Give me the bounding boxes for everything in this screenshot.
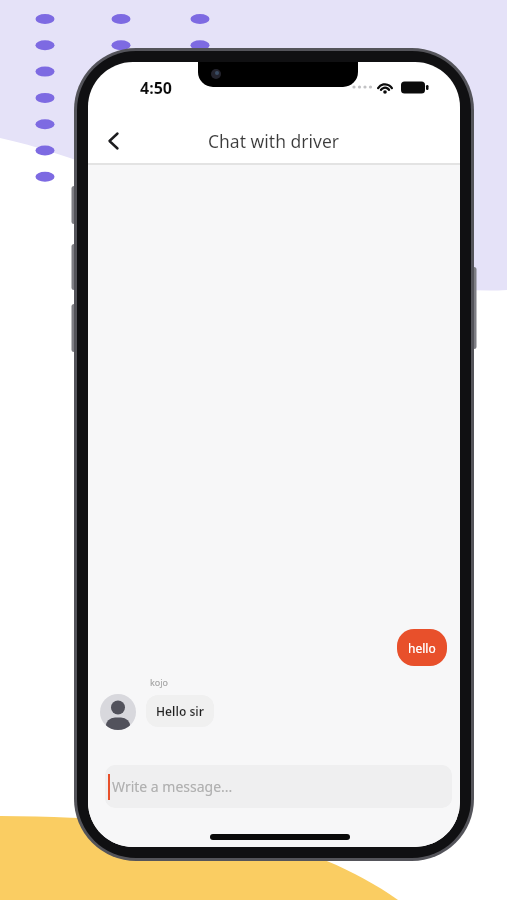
staticText: 4:50: [140, 77, 172, 99]
staticText: hello: [408, 640, 436, 656]
staticText: Chat with driver: [208, 129, 340, 153]
button[interactable]: hello: [397, 629, 447, 666]
button[interactable]: Write a message...: [105, 765, 452, 808]
staticText: kojo: [150, 676, 169, 688]
staticText: Hello sir: [156, 703, 204, 719]
button[interactable]: [94, 122, 134, 160]
staticText: Write a message...: [112, 777, 233, 796]
button[interactable]: Hello sir: [146, 695, 214, 727]
